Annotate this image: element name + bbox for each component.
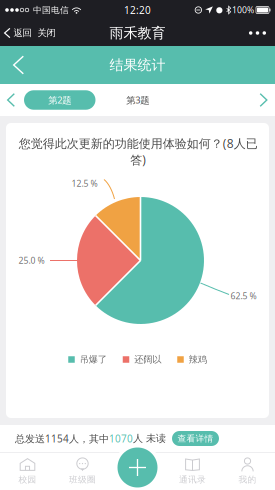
staticText: 通讯录: [179, 474, 206, 485]
staticText: 结果统计: [109, 56, 165, 74]
staticText: 62.5 %: [230, 290, 256, 302]
button[interactable]: Previous question: [0, 84, 24, 116]
staticText: 第3题: [126, 94, 149, 106]
button[interactable]: More options: [242, 20, 273, 46]
button[interactable]: Back: [5, 46, 32, 84]
staticText: 1070: [109, 432, 133, 445]
staticText: 返回: [13, 27, 31, 39]
staticText: 总发送1154人，其中: [15, 432, 109, 445]
button[interactable]: 返回: [2, 20, 33, 46]
staticText: 班级圈: [69, 474, 96, 485]
staticText: 查看详情: [177, 433, 213, 444]
staticText: 雨禾教育: [109, 24, 165, 42]
button[interactable]: 第2题: [24, 90, 95, 110]
staticText: 还阔以: [134, 354, 161, 365]
button[interactable]: Create new: [117, 447, 157, 487]
staticText: 12.5 %: [71, 178, 97, 189]
staticText: 第2题: [48, 94, 71, 106]
staticText: 100%: [230, 4, 256, 16]
staticText: 吊爆了: [80, 354, 107, 365]
staticText: 您觉得此次更新的功能使用体验如何？(8人已答): [18, 135, 257, 168]
button[interactable]: 通讯录: [165, 453, 220, 490]
button[interactable]: 班级圈: [55, 453, 110, 490]
staticText: 关闭: [37, 27, 55, 39]
button[interactable]: Next question: [250, 84, 275, 116]
button[interactable]: 查看详情: [172, 431, 219, 446]
button[interactable]: 第3题: [102, 90, 174, 110]
staticText: 12:20: [124, 3, 151, 17]
staticText: 人 未读: [133, 432, 166, 445]
staticText: 校园: [18, 474, 36, 485]
staticText: 辣鸡: [189, 354, 207, 365]
staticText: 我的: [238, 474, 256, 485]
staticText: 25.0 %: [18, 255, 44, 266]
button[interactable]: 校园: [0, 453, 55, 490]
button[interactable]: 我的: [220, 453, 275, 490]
staticText: 中国电信: [30, 4, 72, 15]
button[interactable]: 关闭: [33, 20, 59, 46]
